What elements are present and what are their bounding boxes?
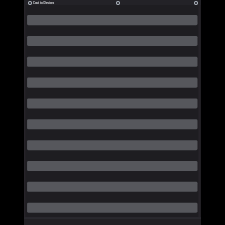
staticText: Cast to Devices xyxy=(33,1,55,5)
button[interactable]: Device 9 xyxy=(27,182,197,192)
button[interactable]: Account xyxy=(28,1,32,5)
button[interactable]: Device 7 xyxy=(27,140,197,150)
button[interactable]: Search xyxy=(116,1,120,5)
button[interactable]: Device 6 xyxy=(27,119,197,129)
button[interactable]: Device 3 xyxy=(27,57,197,67)
button[interactable]: Device 10 xyxy=(27,203,197,213)
button[interactable]: Device 4 xyxy=(27,78,197,88)
button[interactable]: More options xyxy=(194,1,198,5)
button[interactable]: Navigation bar xyxy=(24,217,201,225)
button[interactable]: Device 5 xyxy=(27,98,197,108)
